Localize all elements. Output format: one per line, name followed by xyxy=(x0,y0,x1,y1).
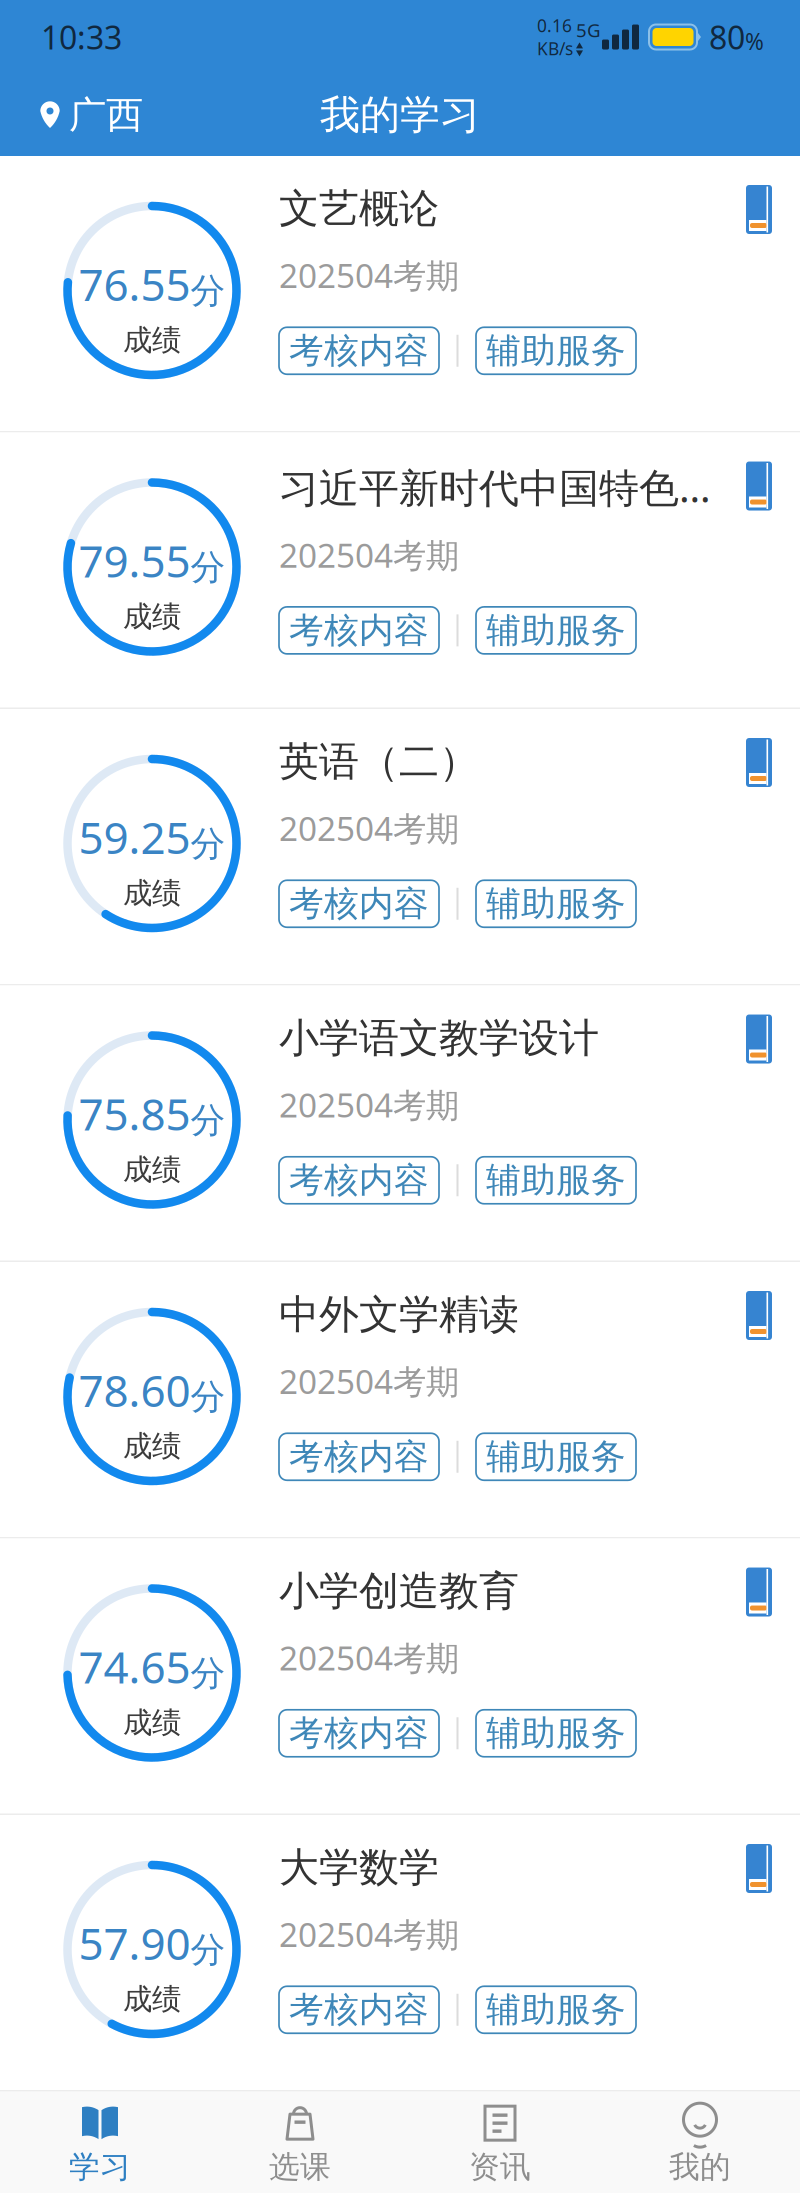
button[interactable]: 79.55 xyxy=(0,432,800,707)
button[interactable]: 辅助服务 xyxy=(476,607,636,654)
button[interactable]: 资讯 xyxy=(400,2089,600,2193)
button[interactable]: 我的 xyxy=(600,2089,800,2193)
staticText: 辅助服务 xyxy=(486,1159,626,1202)
staticText: 辅助服务 xyxy=(486,882,626,925)
button[interactable]: 选课 xyxy=(200,2089,400,2193)
staticText: 考核内容 xyxy=(289,1988,429,2031)
staticText: 0.16 xyxy=(537,14,572,37)
button[interactable]: 考核内容 xyxy=(279,1710,439,1757)
staticText: 文艺概论 xyxy=(279,184,439,233)
staticText: 202504考期 xyxy=(279,1359,459,1403)
staticText: 分 xyxy=(190,546,225,589)
button[interactable]: 辅助服务 xyxy=(476,1986,636,2033)
button[interactable]: 辅助服务 xyxy=(476,1157,636,1204)
button[interactable]: 考核内容 xyxy=(279,607,439,654)
staticText: 中外文学精读 xyxy=(279,1290,519,1339)
button[interactable]: 考核内容 xyxy=(279,1986,439,2033)
staticText: 202504考期 xyxy=(279,1912,459,1956)
button[interactable]: 广西 xyxy=(0,82,155,148)
staticText: % xyxy=(745,26,764,56)
button[interactable]: 76.55 xyxy=(0,156,800,431)
staticText: 考核内容 xyxy=(289,882,429,925)
button[interactable]: 学习 xyxy=(0,2089,200,2193)
staticText: 考核内容 xyxy=(289,1435,429,1478)
staticText: 我的学习 xyxy=(320,90,480,139)
button[interactable]: 74.65 xyxy=(0,1538,800,1813)
staticText: 辅助服务 xyxy=(486,609,626,652)
staticText: 考核内容 xyxy=(289,329,429,372)
staticText: 202504考期 xyxy=(279,1082,459,1127)
staticText: 小学创造教育 xyxy=(279,1566,519,1616)
staticText: 76.55 xyxy=(78,255,190,313)
button[interactable]: 辅助服务 xyxy=(476,327,636,374)
staticText: 英语（二） xyxy=(279,737,479,786)
staticText: 202504考期 xyxy=(279,533,459,577)
staticText: 成绩 xyxy=(123,1705,181,1741)
staticText: 5G xyxy=(576,18,601,42)
button[interactable]: 57.90 xyxy=(0,1815,800,2090)
staticText: 202504考期 xyxy=(279,253,459,297)
staticText: 考核内容 xyxy=(289,1159,429,1202)
button[interactable]: 75.85 xyxy=(0,985,800,1260)
staticText: 资讯 xyxy=(469,2148,531,2186)
button[interactable]: 考核内容 xyxy=(279,1157,439,1204)
staticText: 59.25 xyxy=(78,808,190,866)
staticText: 大学数学 xyxy=(279,1843,439,1892)
staticText: 成绩 xyxy=(123,599,181,635)
button[interactable]: 59.25 xyxy=(0,709,800,984)
staticText: KB/s xyxy=(537,37,573,60)
staticText: 成绩 xyxy=(123,1981,181,2017)
staticText: 考核内容 xyxy=(289,609,429,652)
staticText: 202504考期 xyxy=(279,1635,459,1680)
staticText: 分 xyxy=(190,1099,225,1142)
button[interactable]: 78.60 xyxy=(0,1262,800,1537)
staticText: 分 xyxy=(190,270,225,312)
button[interactable]: 辅助服务 xyxy=(476,1433,636,1480)
staticText: 习近平新时代中国特色… xyxy=(279,460,711,514)
staticText: 小学语文教学设计 xyxy=(279,1013,599,1063)
staticText: 广西 xyxy=(69,92,143,138)
staticText: 辅助服务 xyxy=(486,329,626,372)
staticText: 成绩 xyxy=(123,1152,181,1188)
staticText: 75.85 xyxy=(78,1084,190,1143)
staticText: 79.55 xyxy=(78,531,190,590)
staticText: 选课 xyxy=(269,2148,331,2186)
staticText: 考核内容 xyxy=(289,1712,429,1755)
staticText: 成绩 xyxy=(123,1428,181,1464)
staticText: 辅助服务 xyxy=(486,1435,626,1478)
staticText: 学习 xyxy=(69,2148,131,2186)
staticText: 74.65 xyxy=(78,1637,190,1696)
staticText: 辅助服务 xyxy=(486,1988,626,2031)
staticText: 辅助服务 xyxy=(486,1712,626,1755)
staticText: 分 xyxy=(190,1929,225,1971)
staticText: 分 xyxy=(190,823,225,865)
staticText: 202504考期 xyxy=(279,806,459,850)
button[interactable]: 考核内容 xyxy=(279,1433,439,1480)
staticText: 10:33 xyxy=(41,16,122,58)
staticText: 分 xyxy=(190,1376,225,1418)
button[interactable]: 考核内容 xyxy=(279,327,439,374)
staticText: 成绩 xyxy=(123,875,181,911)
button[interactable]: 辅助服务 xyxy=(476,1710,636,1757)
staticText: 成绩 xyxy=(123,322,181,358)
staticText: 80 xyxy=(709,16,745,58)
staticText: 分 xyxy=(190,1652,225,1695)
staticText: 57.90 xyxy=(78,1914,190,1972)
button[interactable]: 辅助服务 xyxy=(476,880,636,927)
staticText: 我的 xyxy=(669,2148,731,2186)
button[interactable]: 考核内容 xyxy=(279,880,439,927)
staticText: 78.60 xyxy=(78,1361,190,1419)
